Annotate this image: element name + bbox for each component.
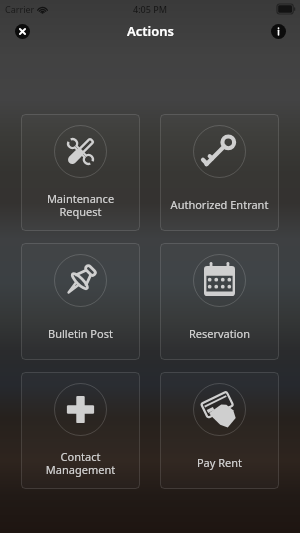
button[interactable]: Close bbox=[9, 18, 35, 44]
button[interactable]: Pay Rent bbox=[160, 372, 279, 489]
button[interactable]: Contact Management bbox=[21, 372, 140, 489]
staticText: Reservation bbox=[163, 326, 276, 341]
staticText: Bulletin Post bbox=[24, 326, 137, 341]
staticText: Maintenance Request bbox=[24, 191, 137, 219]
staticText: Carrier bbox=[5, 3, 35, 15]
button[interactable]: Bulletin Post bbox=[21, 243, 140, 360]
button[interactable]: Info bbox=[265, 18, 291, 44]
staticText: Contact Management bbox=[24, 449, 137, 477]
staticText: Authorized Entrant bbox=[163, 197, 276, 212]
button[interactable]: Authorized Entrant bbox=[160, 114, 279, 231]
button[interactable]: Maintenance Request bbox=[21, 114, 140, 231]
staticText: 4:05 PM bbox=[133, 3, 167, 15]
staticText: Pay Rent bbox=[163, 455, 276, 470]
button[interactable]: Reservation bbox=[160, 243, 279, 360]
staticText: Actions bbox=[127, 22, 174, 40]
